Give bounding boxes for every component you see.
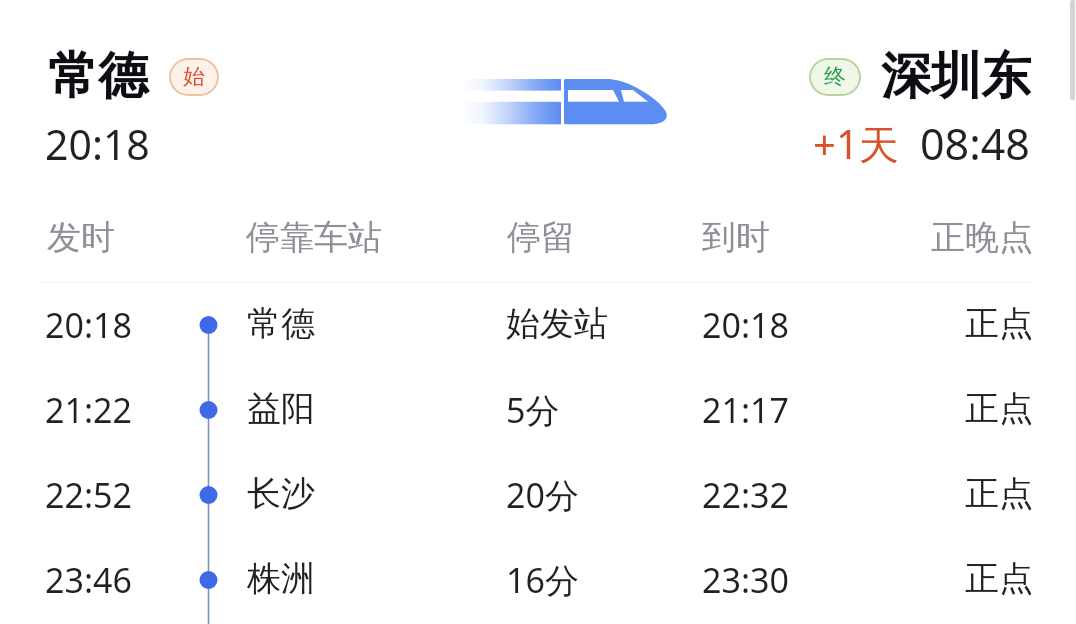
staticText: 株洲 [247, 557, 315, 600]
staticText: 21:22 [45, 387, 132, 433]
button[interactable]: 22:52 [0, 452, 1076, 537]
staticText: 停靠车站 [246, 216, 382, 259]
staticText: 始 [183, 63, 205, 91]
staticText: 20:18 [702, 302, 789, 348]
button[interactable]: 终 [809, 40, 1035, 165]
button[interactable]: 23:46 [0, 537, 1076, 622]
staticText: 常德 [48, 45, 148, 108]
staticText: 22:32 [702, 472, 789, 518]
button[interactable]: 常德 [45, 40, 223, 165]
staticText: 正点 [833, 472, 1033, 515]
staticText: 正点 [833, 302, 1033, 345]
staticText: 发时 [47, 216, 115, 259]
staticText: 终 [824, 63, 846, 91]
staticText: 21:17 [702, 387, 789, 433]
staticText: 08:48 [920, 114, 1030, 173]
staticText: 正晚点 [833, 216, 1033, 259]
staticText: 益阳 [247, 387, 315, 430]
staticText: 20:18 [45, 302, 132, 348]
staticText: 正点 [833, 387, 1033, 430]
staticText: 始发站 [506, 302, 608, 345]
staticText: 23:46 [45, 557, 132, 603]
staticText: 到时 [702, 216, 770, 259]
staticText: 5分 [506, 387, 560, 433]
button[interactable]: 21:22 [0, 367, 1076, 452]
button[interactable]: 20:18 [0, 282, 1076, 367]
staticText: 停留 [507, 216, 575, 259]
other: High speed train [462, 79, 667, 125]
staticText: 20:18 [45, 116, 150, 172]
staticText: +1天 [813, 116, 899, 171]
staticText: 22:52 [45, 472, 132, 518]
staticText: 20分 [506, 472, 579, 518]
staticText: 正点 [833, 557, 1033, 600]
staticText: 23:30 [702, 557, 789, 603]
staticText: 16分 [506, 557, 579, 603]
staticText: 深圳东 [881, 45, 1031, 108]
staticText: 常德 [247, 302, 315, 345]
staticText: 长沙 [247, 472, 315, 515]
